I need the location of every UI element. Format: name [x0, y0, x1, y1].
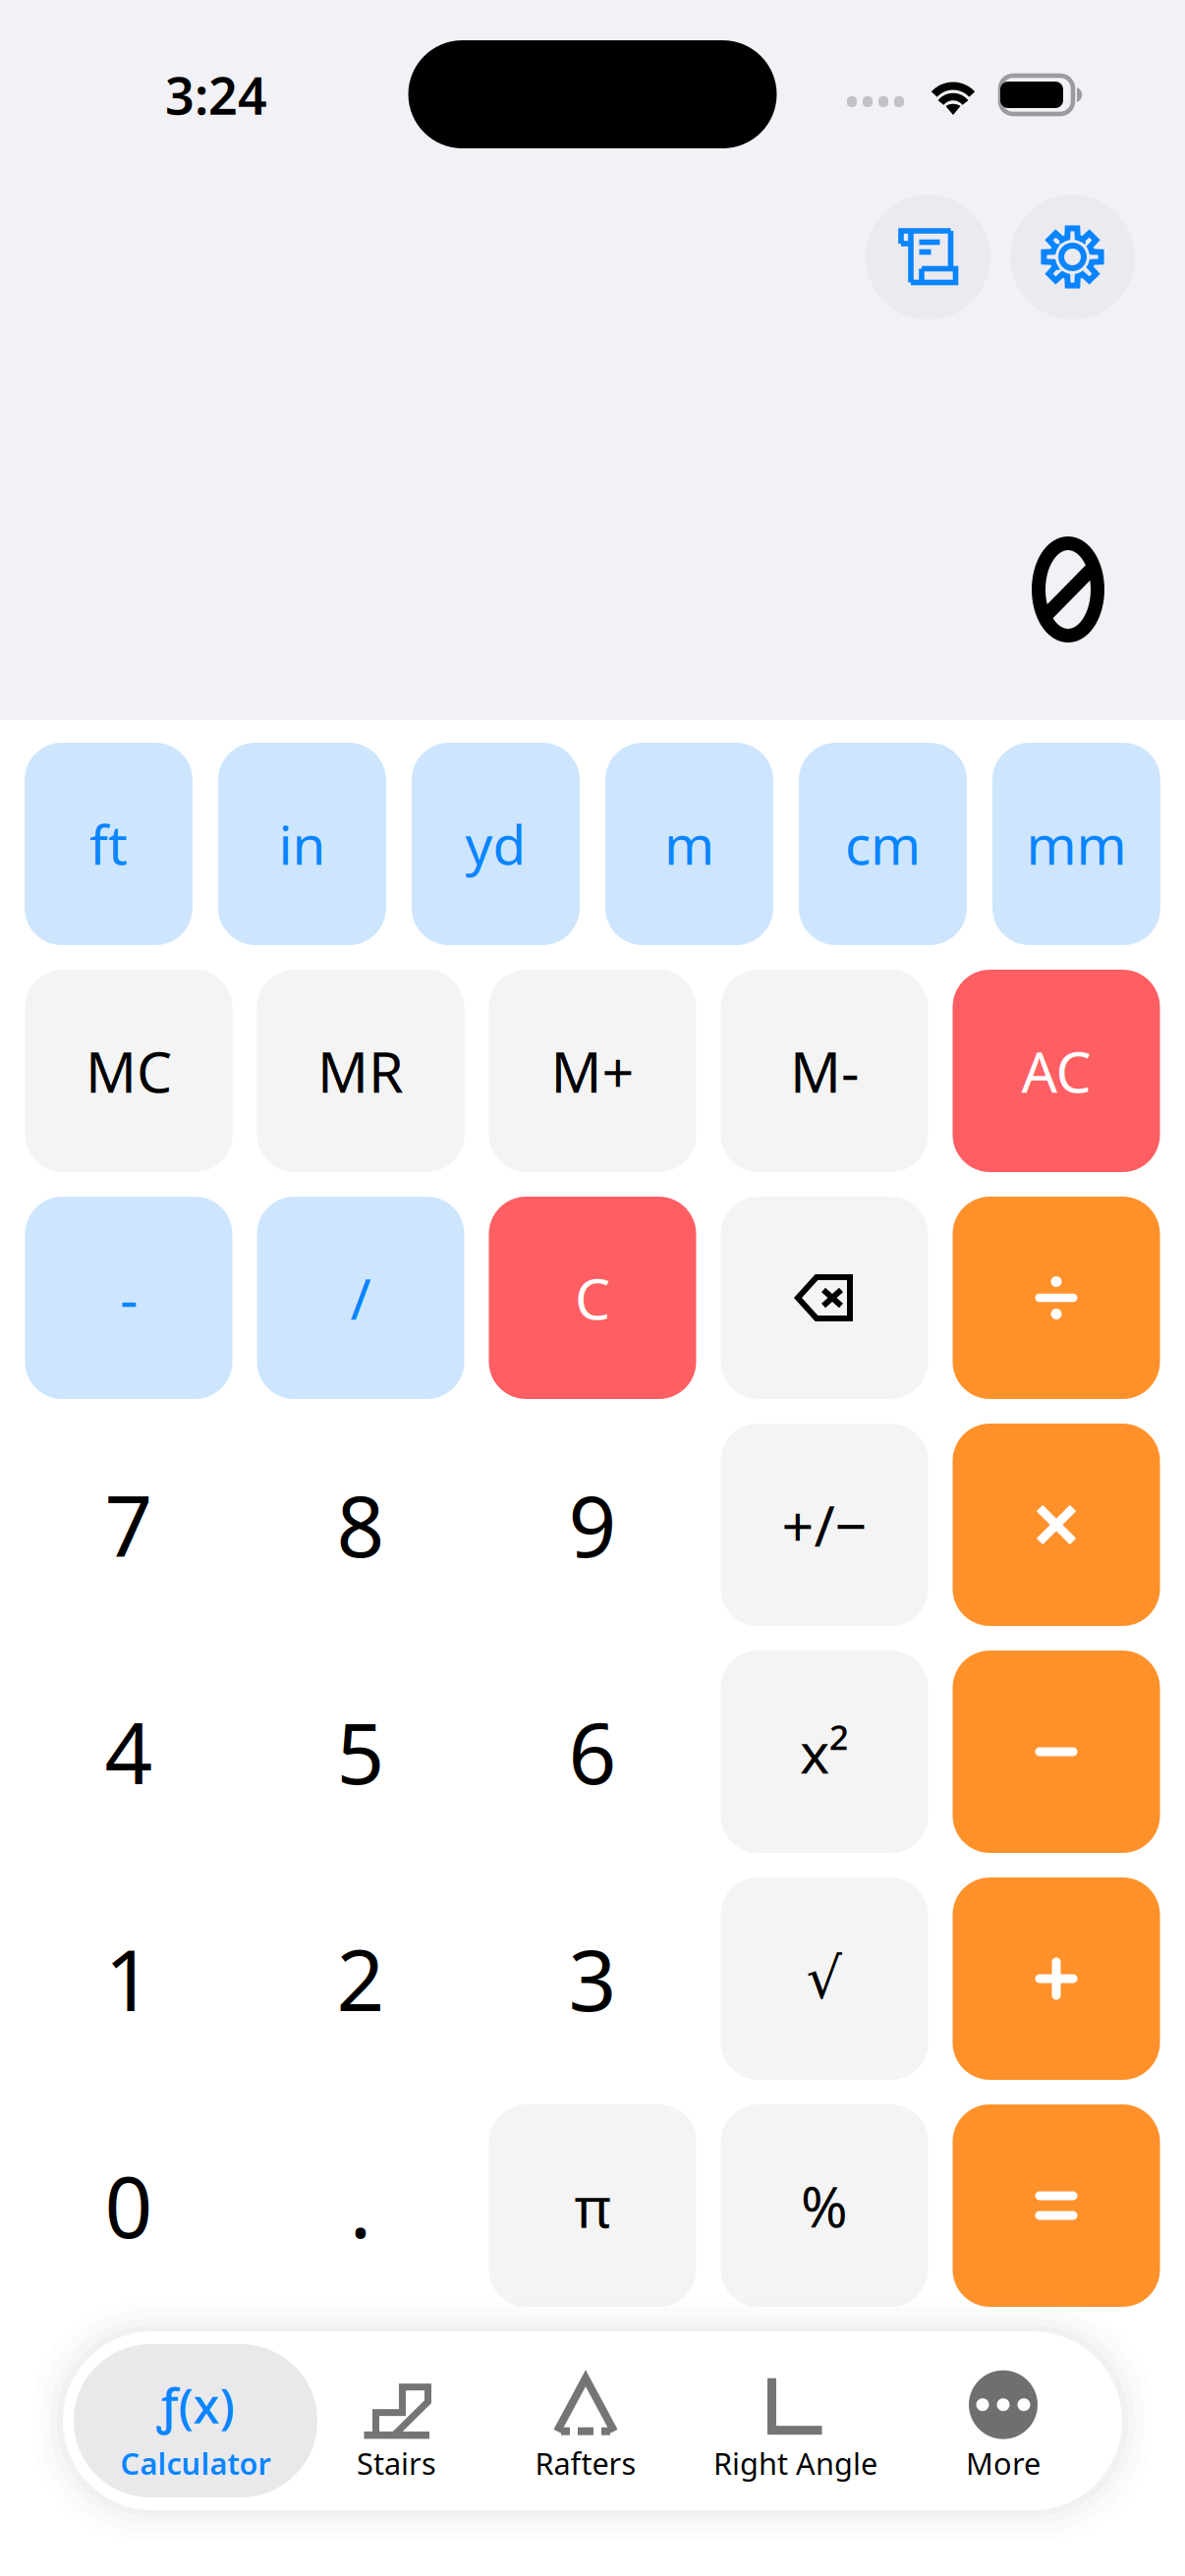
- button[interactable]: M+: [489, 970, 696, 1172]
- staticText: 4: [105, 1696, 153, 1807]
- button[interactable]: Stairs: [328, 2342, 465, 2499]
- staticText: 3:24: [165, 61, 267, 129]
- button[interactable]: MC: [25, 970, 232, 1172]
- staticText: yd: [465, 808, 526, 880]
- button[interactable]: ft: [25, 743, 193, 945]
- staticText: √: [806, 1947, 843, 2011]
- button[interactable]: m: [605, 743, 773, 945]
- button[interactable]: π: [489, 2104, 696, 2307]
- staticText: ft: [89, 808, 128, 880]
- button[interactable]: .: [257, 2104, 464, 2307]
- button[interactable]: /: [257, 1197, 464, 1399]
- button[interactable]: Divide: [953, 1197, 1160, 1399]
- staticText: π: [574, 2168, 611, 2243]
- staticText: More: [966, 2443, 1041, 2483]
- staticText: Stairs: [357, 2443, 436, 2483]
- staticText: MC: [85, 1033, 172, 1108]
- staticText: %: [801, 2168, 848, 2243]
- button[interactable]: 6: [489, 1651, 696, 1853]
- staticText: Calculator: [120, 2443, 271, 2483]
- button[interactable]: 4: [25, 1651, 232, 1853]
- button[interactable]: Right Angle: [706, 2342, 884, 2499]
- staticText: 7: [105, 1469, 153, 1580]
- staticText: 8: [337, 1469, 385, 1580]
- staticText: M+: [551, 1033, 634, 1108]
- staticText: 0: [105, 2150, 153, 2261]
- button[interactable]: Backspace: [721, 1197, 928, 1399]
- staticText: AC: [1021, 1033, 1091, 1108]
- staticText: MR: [317, 1033, 404, 1108]
- button[interactable]: 3: [489, 1877, 696, 2080]
- staticText: m: [664, 808, 714, 880]
- button[interactable]: Tape measure: [866, 195, 990, 319]
- button[interactable]: 2: [257, 1877, 464, 2080]
- staticText: Rafters: [535, 2443, 636, 2483]
- button[interactable]: 5: [257, 1651, 464, 1853]
- button[interactable]: Plus: [953, 1877, 1160, 2080]
- staticText: ƒ(x): [157, 2373, 234, 2437]
- button[interactable]: Rafters: [465, 2342, 706, 2499]
- button[interactable]: 7: [25, 1424, 232, 1626]
- staticText: 1: [105, 1923, 153, 2034]
- button[interactable]: AC: [953, 970, 1160, 1172]
- staticText: .: [349, 2150, 372, 2261]
- staticText: /: [350, 1260, 371, 1335]
- staticText: x²: [800, 1714, 849, 1789]
- staticText: 9: [568, 1469, 617, 1580]
- button[interactable]: 8: [257, 1424, 464, 1626]
- staticText: mm: [1026, 808, 1127, 880]
- button[interactable]: yd: [412, 743, 580, 945]
- button[interactable]: M-: [721, 970, 928, 1172]
- button[interactable]: √: [721, 1877, 928, 2080]
- staticText: -: [120, 1260, 138, 1335]
- button[interactable]: in: [218, 743, 386, 945]
- button[interactable]: MR: [257, 970, 464, 1172]
- button[interactable]: -: [25, 1197, 232, 1399]
- button[interactable]: Equals: [953, 2104, 1160, 2307]
- button[interactable]: Multiply: [953, 1424, 1160, 1626]
- button[interactable]: cm: [799, 743, 967, 945]
- button[interactable]: ƒ(x): [63, 2342, 328, 2499]
- button[interactable]: +/−: [721, 1424, 928, 1626]
- staticText: 6: [568, 1696, 617, 1807]
- staticText: cm: [845, 808, 921, 880]
- staticText: 3: [568, 1923, 617, 2034]
- button[interactable]: 0: [25, 2104, 232, 2307]
- staticText: 2: [337, 1923, 385, 2034]
- staticText: C: [575, 1260, 610, 1335]
- button[interactable]: x²: [721, 1651, 928, 1853]
- staticText: M-: [790, 1033, 859, 1108]
- button[interactable]: 1: [25, 1877, 232, 2080]
- button[interactable]: %: [721, 2104, 928, 2307]
- staticText: +/−: [782, 1487, 867, 1562]
- button[interactable]: Minus: [953, 1651, 1160, 1853]
- button[interactable]: More: [884, 2342, 1122, 2499]
- staticText: Right Angle: [713, 2443, 877, 2483]
- button[interactable]: Settings: [1010, 195, 1135, 319]
- staticText: 5: [337, 1696, 385, 1807]
- button[interactable]: 9: [489, 1424, 696, 1626]
- staticText: in: [279, 808, 326, 880]
- button[interactable]: mm: [992, 743, 1160, 945]
- button[interactable]: C: [489, 1197, 696, 1399]
